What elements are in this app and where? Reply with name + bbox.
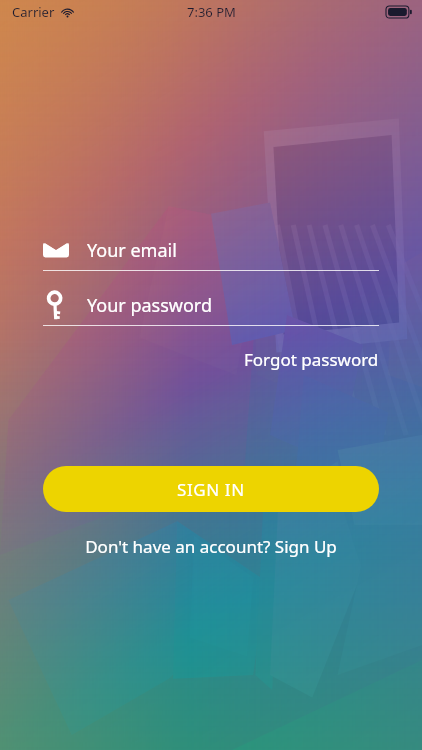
- button[interactable]: Don't have an account? Sign Up: [77, 531, 345, 562]
- button[interactable]: Your password: [43, 285, 379, 325]
- staticText: Forgot password: [244, 348, 379, 371]
- staticText: Your password: [87, 293, 213, 318]
- button[interactable]: Your email: [43, 230, 379, 270]
- button[interactable]: Forgot password: [242, 344, 381, 375]
- staticText: Your email: [87, 238, 177, 263]
- staticText: Carrier: [12, 3, 55, 21]
- staticText: Don't have an account? Sign Up: [85, 535, 337, 558]
- button[interactable]: SIGN IN: [43, 466, 379, 512]
- staticText: 7:36 PM: [187, 3, 236, 21]
- staticText: SIGN IN: [177, 478, 245, 501]
